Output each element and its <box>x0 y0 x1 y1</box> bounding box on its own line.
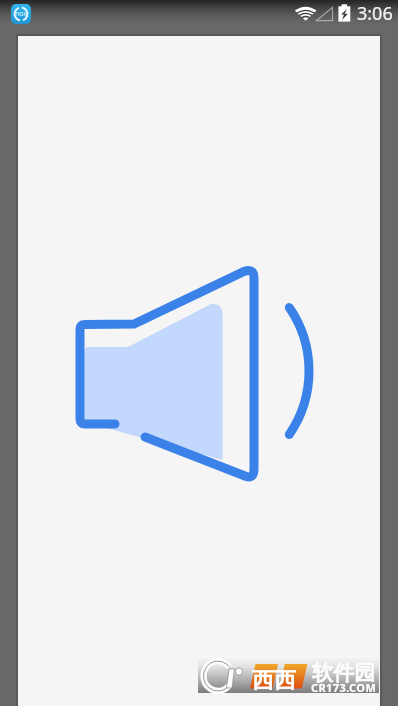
staticText: 西西 <box>252 667 296 695</box>
staticText: 3:06 <box>357 1 393 26</box>
staticText: nox <box>15 9 28 19</box>
staticText: CR173.COM <box>311 680 377 695</box>
other: Notification <box>11 4 31 24</box>
staticText: 软件园 <box>312 660 375 686</box>
